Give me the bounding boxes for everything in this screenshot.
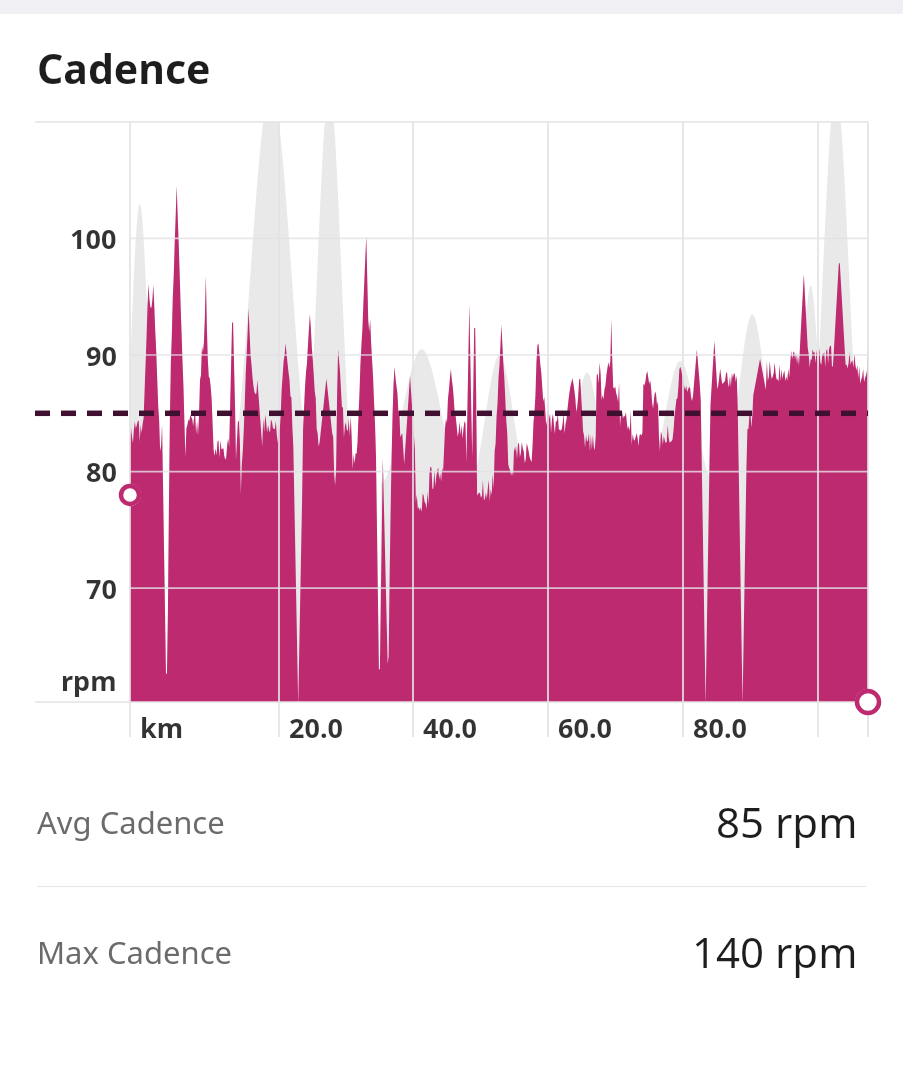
staticText: 85 rpm (716, 793, 858, 850)
staticText: 140 rpm (692, 923, 858, 980)
button[interactable]: Avg Cadence (0, 757, 903, 886)
button[interactable]: Max Cadence (0, 887, 903, 1016)
other: Cadence chart over distance (0, 112, 903, 757)
staticText: Cadence (37, 40, 211, 96)
staticText: Max Cadence (37, 931, 233, 973)
staticText: Avg Cadence (37, 801, 225, 843)
